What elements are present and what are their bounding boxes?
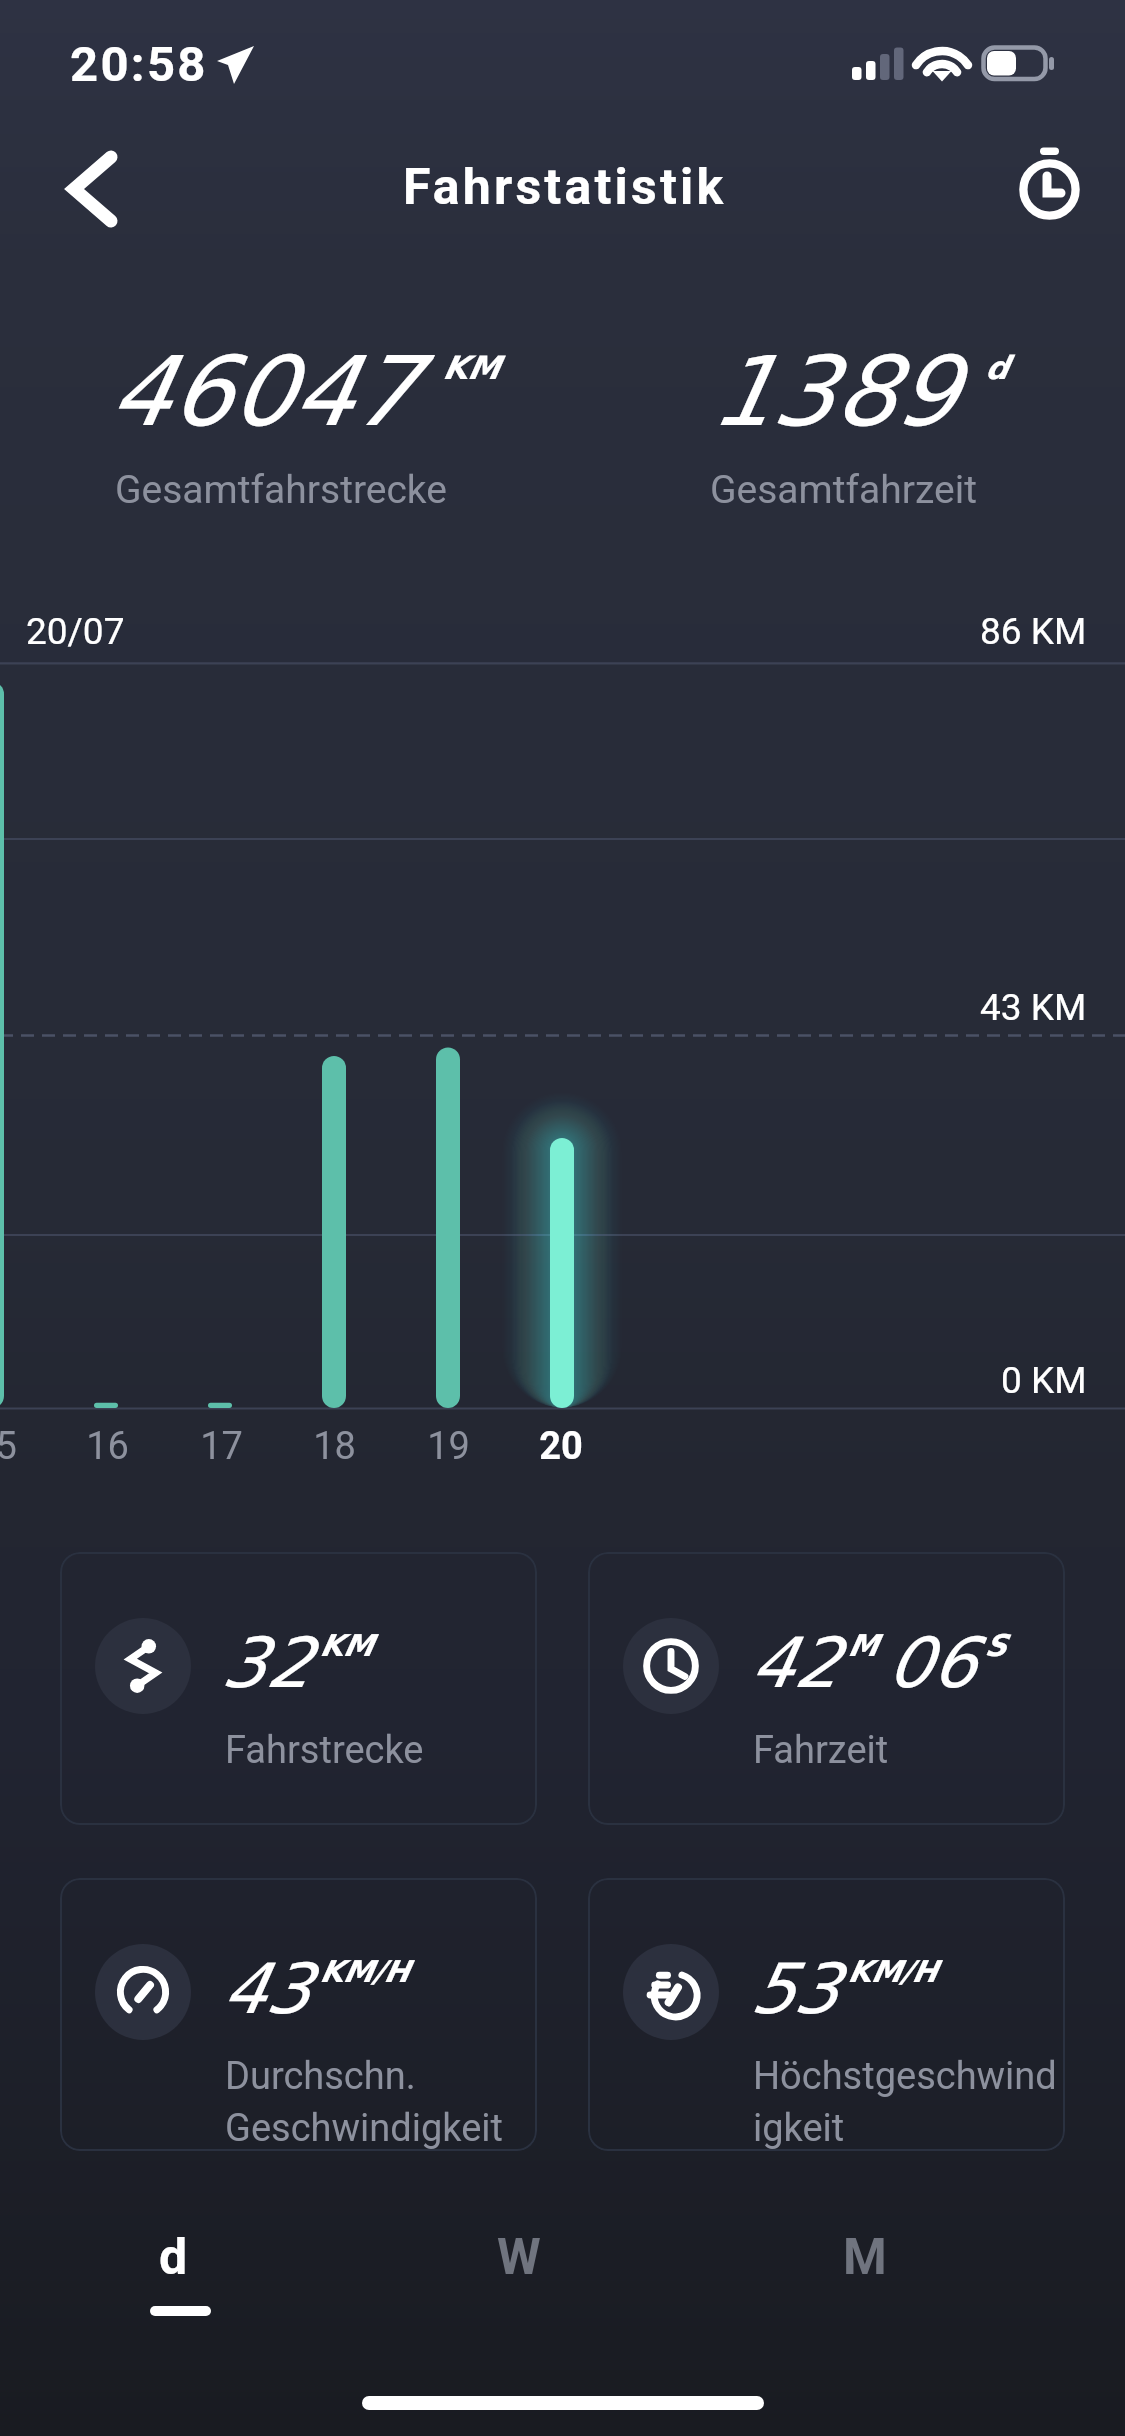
staticText: 20: [539, 1424, 583, 1469]
button[interactable]: 53: [588, 1878, 1065, 2151]
staticText: d: [986, 349, 1009, 386]
staticText: 86 KM: [980, 610, 1087, 653]
staticText: Höchstgeschwindigkeit: [753, 2054, 1065, 2150]
staticText: 42: [753, 1623, 841, 1703]
staticText: 17: [200, 1424, 243, 1469]
staticText: 19: [427, 1424, 470, 1469]
staticText: KM: [321, 1628, 375, 1663]
staticText: KM/H: [849, 1954, 939, 1989]
button[interactable]: d: [0, 2228, 346, 2338]
staticText: 06: [890, 1623, 978, 1703]
staticText: Fahrstatistik: [403, 158, 727, 217]
staticText: W: [497, 2228, 541, 2287]
staticText: Durchschn. Geschwindigkeit: [225, 2054, 537, 2150]
staticText: Gesamtfahrzeit: [710, 467, 977, 513]
staticText: M: [849, 1628, 879, 1663]
staticText: 20:58: [70, 36, 208, 93]
staticText: KM: [444, 349, 501, 386]
button[interactable]: 43: [60, 1878, 537, 2151]
button[interactable]: M: [692, 2228, 1038, 2338]
staticText: 15: [0, 1424, 17, 1469]
button[interactable]: W: [346, 2228, 692, 2338]
button[interactable]: 32: [60, 1552, 537, 1825]
staticText: 16: [86, 1424, 129, 1469]
staticText: 20/07: [26, 610, 125, 653]
staticText: 1389: [716, 336, 961, 448]
staticText: 53: [753, 1949, 841, 2029]
staticText: 43: [225, 1949, 313, 2029]
staticText: Fahrzeit: [753, 1728, 889, 1773]
staticText: 46047: [113, 336, 419, 448]
staticText: KM/H: [321, 1954, 411, 1989]
staticText: Fahrstrecke: [225, 1728, 424, 1773]
staticText: 32: [225, 1623, 313, 1703]
button[interactable]: Stoppuhr: [999, 138, 1101, 240]
staticText: 0 KM: [1001, 1359, 1087, 1402]
staticText: d: [159, 2228, 188, 2287]
staticText: M: [843, 2228, 887, 2287]
staticText: 18: [313, 1424, 356, 1469]
staticText: 43 KM: [980, 986, 1087, 1029]
button[interactable]: 42: [588, 1552, 1065, 1825]
staticText: S: [986, 1628, 1008, 1663]
staticText: Gesamtfahrstrecke: [115, 467, 447, 513]
button[interactable]: Zurück: [40, 137, 112, 241]
